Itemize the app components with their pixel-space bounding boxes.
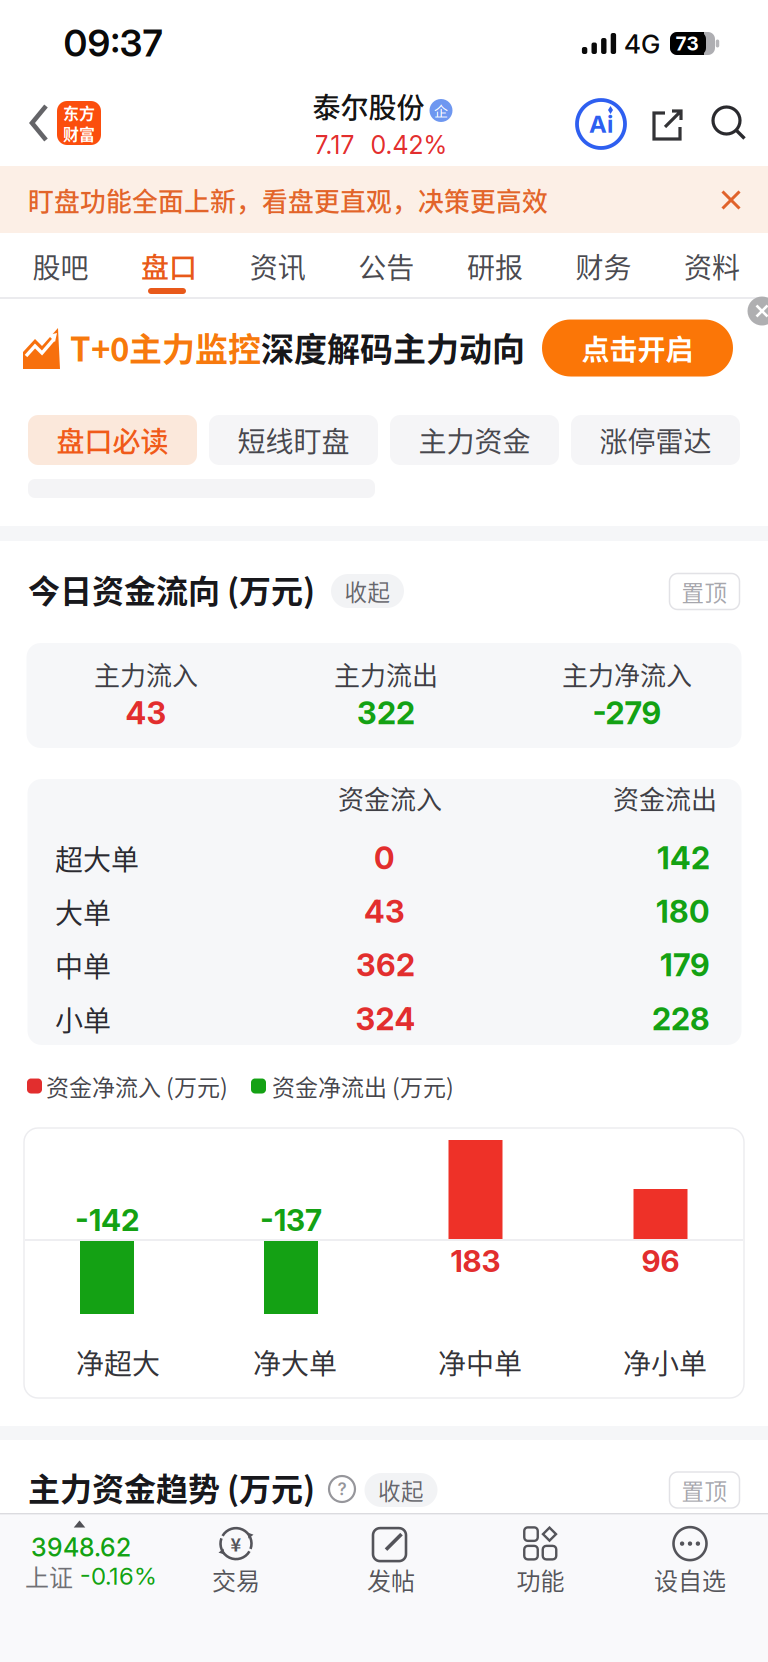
staticText: 资料 xyxy=(684,246,740,286)
staticText: 322 xyxy=(357,694,415,732)
staticText: 96 xyxy=(641,1243,679,1279)
staticText: 超大单 xyxy=(55,838,139,878)
staticText: 资讯 xyxy=(250,246,306,286)
staticText: T+0主力监控 xyxy=(70,323,261,371)
button[interactable]: Back xyxy=(28,104,50,142)
button[interactable]: 盘口 xyxy=(124,238,214,294)
button[interactable]: ¥ xyxy=(171,1520,301,1602)
staticText: 泰尔股份 xyxy=(312,86,424,126)
staticText: 228 xyxy=(652,1000,710,1038)
staticText: 09:37 xyxy=(63,21,162,65)
button[interactable]: 盘口必读 xyxy=(28,415,197,465)
staticText: 财务 xyxy=(575,246,631,286)
staticText: 小单 xyxy=(55,999,111,1039)
staticText: 收起 xyxy=(378,1474,424,1506)
button[interactable]: 研报 xyxy=(450,238,540,294)
staticText: 3948.62 xyxy=(31,1532,131,1563)
staticText: 涨停雷达 xyxy=(599,420,711,460)
button[interactable]: 东方财富 xyxy=(57,101,101,145)
staticText: 180 xyxy=(656,893,710,930)
staticText: 今日资金流向 (万元) xyxy=(28,566,315,612)
staticText: 主力流入 xyxy=(94,655,198,693)
staticText: 324 xyxy=(355,1000,415,1038)
staticText: -279 xyxy=(592,694,661,732)
button[interactable]: 发帖 xyxy=(326,1520,456,1602)
staticText: 主力资金 xyxy=(418,420,530,460)
staticText: 置顶 xyxy=(681,1474,727,1506)
button[interactable]: 涨停雷达 xyxy=(571,415,740,465)
staticText: 主力净流入 xyxy=(562,655,692,693)
button[interactable]: 3948.62 xyxy=(16,1513,176,1599)
staticText: 交易 xyxy=(212,1562,260,1597)
staticText: 置顶 xyxy=(681,575,727,608)
button[interactable]: Search xyxy=(710,104,748,142)
staticText: 公告 xyxy=(358,246,414,286)
staticText: 净超大 xyxy=(76,1342,160,1382)
button[interactable]: 收起 xyxy=(331,574,404,608)
staticText: 功能 xyxy=(516,1562,564,1597)
button[interactable]: 股吧 xyxy=(15,238,105,294)
button[interactable]: 短线盯盘 xyxy=(209,415,378,465)
button[interactable]: Ai 助手 xyxy=(575,98,627,150)
button[interactable]: 点击开启 xyxy=(542,319,733,376)
staticText: 主力资金趋势 (万元) xyxy=(28,1464,315,1510)
staticText: 上证 xyxy=(25,1559,73,1593)
staticText: 净中单 xyxy=(438,1342,522,1382)
staticText: -0.16% xyxy=(80,1561,157,1590)
staticText: 短线盯盘 xyxy=(237,420,349,460)
staticText: 盯盘功能全面上新，看盘更直观，决策更高效 xyxy=(28,181,548,219)
button[interactable]: Dismiss banner xyxy=(720,189,741,210)
button[interactable]: 功能 xyxy=(475,1520,605,1602)
staticText: 0 xyxy=(374,839,395,877)
button[interactable]: 设自选 xyxy=(625,1520,755,1602)
button[interactable]: 财务 xyxy=(558,238,648,294)
staticText: 142 xyxy=(657,839,710,877)
staticText: 73 xyxy=(675,32,698,55)
staticText: 0.42% xyxy=(370,130,447,160)
button[interactable]: 置顶 xyxy=(669,1472,739,1508)
staticText: 企 xyxy=(434,100,448,121)
staticText: 大单 xyxy=(55,891,111,932)
button[interactable]: Help xyxy=(327,1474,357,1504)
staticText: 4G xyxy=(624,28,660,60)
staticText: 东方 xyxy=(63,101,95,124)
staticText: 主力流出 xyxy=(334,655,438,693)
staticText: Ai xyxy=(589,109,613,138)
button[interactable]: Close ad xyxy=(747,296,768,325)
staticText: 发帖 xyxy=(367,1562,415,1597)
button[interactable]: 置顶 xyxy=(669,573,739,609)
staticText: ¥ xyxy=(230,1531,241,1557)
button[interactable]: 收起 xyxy=(364,1473,437,1507)
staticText: 点击开启 xyxy=(581,328,693,368)
staticText: 资金净流入 (万元) xyxy=(46,1069,228,1103)
staticText: 财富 xyxy=(63,122,95,145)
staticText: 研报 xyxy=(467,246,523,286)
staticText: 7.17 xyxy=(314,130,354,160)
staticText: -137 xyxy=(260,1202,322,1238)
staticText: 中单 xyxy=(55,945,111,985)
staticText: 179 xyxy=(660,946,710,984)
staticText: 收起 xyxy=(344,575,390,607)
staticText: 362 xyxy=(356,946,415,984)
staticText: 盘口 xyxy=(141,246,197,286)
button[interactable]: 主力资金 xyxy=(390,415,559,465)
staticText: 净小单 xyxy=(623,1342,707,1382)
staticText: 43 xyxy=(125,694,166,732)
button[interactable]: 资料 xyxy=(667,238,757,294)
staticText: 设自选 xyxy=(654,1562,726,1597)
staticText: 183 xyxy=(450,1243,500,1279)
button[interactable]: 资讯 xyxy=(233,238,323,294)
staticText: 资金流出 xyxy=(613,779,717,817)
button[interactable]: 公告 xyxy=(341,238,431,294)
staticText: 资金净流出 (万元) xyxy=(272,1069,454,1103)
staticText: 深度解码主力动向 xyxy=(261,323,525,371)
button[interactable]: Share xyxy=(648,104,688,144)
staticText: -142 xyxy=(75,1202,139,1238)
staticText: 股吧 xyxy=(32,246,88,286)
staticText: 43 xyxy=(364,893,405,930)
staticText: 净大单 xyxy=(253,1342,337,1382)
staticText: 盘口必读 xyxy=(56,420,168,460)
staticText: ? xyxy=(337,1479,346,1499)
staticText: 资金流入 xyxy=(338,779,442,817)
